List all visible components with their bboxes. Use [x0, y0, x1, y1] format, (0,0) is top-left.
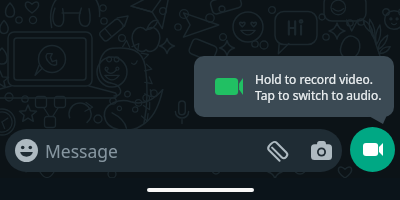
staticText: Message	[45, 139, 118, 163]
staticText: Tap to switch to audio.	[255, 87, 382, 103]
staticText: Hold to record video.	[255, 71, 373, 87]
button[interactable]: Video call	[350, 127, 395, 172]
button[interactable]: Camera	[311, 141, 332, 160]
button[interactable]: Emoji	[5, 129, 342, 172]
button[interactable]: Emoji	[15, 139, 38, 162]
button[interactable]: Attach	[267, 138, 293, 164]
